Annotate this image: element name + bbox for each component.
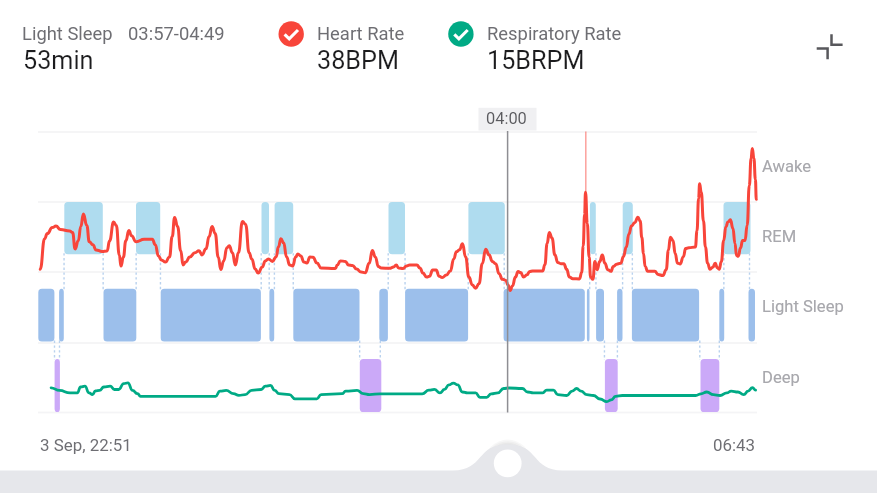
staticText: 03:57-04:49 [128,23,225,45]
staticText: Light Sleep [22,23,113,45]
staticText: Deep [762,368,800,387]
staticText: 53min [23,46,94,76]
staticText: REM [762,227,797,246]
staticText: Light Sleep [762,297,844,316]
button[interactable]: Sleep stages chart [38,128,758,418]
staticText: 06:43 [713,435,756,455]
button[interactable]: Exit full screen [810,28,860,66]
staticText: 3 Sep, 22:51 [40,435,132,455]
button[interactable] [448,18,628,76]
button[interactable] [21,18,261,76]
staticText: Awake [762,157,812,176]
staticText: 04:00 [486,109,527,128]
staticText: 15BRPM [487,46,585,76]
button[interactable]: Drag handle [485,441,531,487]
staticText: Heart Rate [317,23,405,45]
staticText: 38BPM [317,46,399,76]
staticText: Respiratory Rate [487,23,622,45]
button[interactable] [278,18,408,76]
